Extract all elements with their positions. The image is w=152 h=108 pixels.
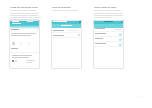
button[interactable] — [51, 29, 82, 34]
button[interactable] — [93, 38, 124, 43]
button[interactable] — [93, 28, 124, 33]
staticText: Lorem ipsum dolor sit amet. — [52, 9, 79, 12]
button[interactable] — [93, 43, 124, 48]
staticText: Learn more — [94, 19, 105, 22]
staticText: Lorem ipsum dolor sit amet consectetur a… — [10, 9, 41, 22]
button[interactable]: Comment — [20, 42, 23, 45]
staticText: Using the incoming e-site — [10, 6, 38, 9]
button[interactable] — [51, 34, 82, 39]
button[interactable]: Selected — [119, 43, 122, 46]
staticText: Send to selection — [52, 6, 71, 9]
staticText: Learn more about settings — [10, 23, 35, 26]
button[interactable] — [11, 20, 23, 24]
staticText: 1 of 3 — [136, 95, 142, 98]
button[interactable] — [25, 20, 37, 24]
button[interactable] — [93, 33, 124, 38]
button[interactable]: Selected — [119, 33, 122, 36]
staticText: Select items to send — [94, 6, 116, 9]
button[interactable]: Share — [28, 42, 31, 45]
button[interactable]: Photo — [12, 42, 15, 45]
staticText: Lorem ipsum dolor sit amet consectetur a… — [94, 9, 125, 18]
button[interactable]: Selected — [119, 38, 122, 41]
